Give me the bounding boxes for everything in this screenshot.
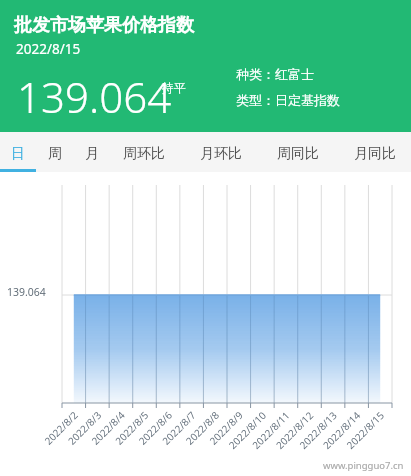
staticText: 类型：日定基指数 bbox=[236, 92, 340, 108]
staticText: 139.064 bbox=[17, 68, 172, 125]
staticText: 月 bbox=[85, 145, 99, 163]
staticText: 持平 bbox=[162, 80, 186, 95]
button[interactable]: 周 bbox=[40, 142, 70, 168]
button[interactable]: 月 bbox=[77, 142, 107, 168]
staticText: 周 bbox=[48, 145, 62, 163]
staticText: 日 bbox=[11, 145, 25, 163]
staticText: 批发市场苹果价格指数 bbox=[14, 14, 194, 37]
staticText: 种类：红富士 bbox=[236, 66, 314, 82]
button[interactable]: 周环比 bbox=[115, 142, 173, 168]
button[interactable]: 月同比 bbox=[346, 142, 404, 168]
button[interactable]: 周同比 bbox=[269, 142, 327, 168]
button[interactable]: 日 bbox=[0, 142, 36, 168]
staticText: 月同比 bbox=[354, 145, 396, 163]
staticText: 2022/8/15 bbox=[16, 40, 81, 58]
staticText: 周环比 bbox=[123, 145, 165, 163]
button[interactable]: 月环比 bbox=[192, 142, 250, 168]
staticText: 月环比 bbox=[200, 145, 242, 163]
staticText: 周同比 bbox=[277, 145, 319, 163]
